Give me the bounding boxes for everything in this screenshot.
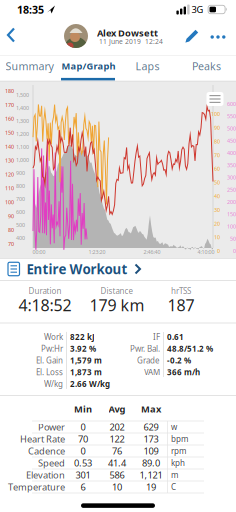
staticText: 00:00 <box>32 248 45 256</box>
staticText: 70 <box>78 433 88 445</box>
staticText: 80 <box>8 226 14 234</box>
staticText: Work <box>44 332 63 342</box>
staticText: 0 <box>217 247 220 255</box>
staticText: 6 <box>80 481 85 493</box>
staticText: IF <box>153 332 160 342</box>
staticText: 301 <box>75 469 90 481</box>
staticText: 400 <box>16 234 25 242</box>
staticText: Distance <box>100 286 133 296</box>
staticText: 1,000 <box>16 156 29 164</box>
staticText: 50 <box>214 179 220 186</box>
staticText: 80 <box>214 138 220 145</box>
staticText: 19 <box>146 481 156 493</box>
staticText: Pw:Hr <box>41 343 63 354</box>
staticText: 0.61 <box>167 332 184 342</box>
staticText: 90 <box>8 213 14 220</box>
staticText: 130 <box>5 157 14 164</box>
staticText: 20 <box>214 220 220 227</box>
staticText: El. Loss <box>36 367 63 377</box>
staticText: Elevation <box>26 469 65 481</box>
staticText: 150 <box>227 211 236 218</box>
staticText: 1:23:20 <box>88 248 105 256</box>
staticText: 500 <box>16 221 25 229</box>
staticText: 1,300 <box>16 117 29 125</box>
button[interactable]: Athlete Alex Dowsett <box>64 20 184 52</box>
staticText: Duration <box>28 286 61 296</box>
staticText: 300 <box>227 174 236 181</box>
staticText: 10 <box>214 234 220 241</box>
button[interactable]: Summary <box>0 55 59 77</box>
staticText: Summary <box>5 59 53 73</box>
staticText: 48.8/51.2 % <box>167 343 213 354</box>
staticText: 40 <box>214 193 220 200</box>
staticText: 550 <box>227 113 236 120</box>
staticText: 70 <box>214 152 220 159</box>
staticText: 0 <box>80 421 85 433</box>
staticText: 30 <box>214 206 220 213</box>
button[interactable]: Map/Graph <box>55 55 121 77</box>
staticText: 120 <box>5 171 14 178</box>
staticText: 366 m/h <box>167 367 200 377</box>
staticText: 600 <box>16 208 25 216</box>
staticText: 1,873 m <box>70 367 102 377</box>
staticText: 187 <box>167 294 194 316</box>
button[interactable]: Chart options <box>206 92 223 106</box>
button[interactable]: Peaks <box>177 55 236 77</box>
button[interactable]: Edit <box>185 29 199 43</box>
staticText: 822 kJ <box>70 332 95 342</box>
staticText: 400 <box>227 149 236 157</box>
staticText: 100 <box>211 110 220 118</box>
button[interactable]: Entire Workout <box>0 258 236 280</box>
button[interactable]: Laps <box>118 55 177 77</box>
staticText: 1,200 <box>16 130 29 138</box>
staticText: 350 <box>227 162 236 169</box>
staticText: 0 <box>233 247 236 255</box>
staticText: 700 <box>16 195 25 203</box>
staticText: Laps <box>135 59 159 73</box>
staticText: Temperature <box>8 481 65 493</box>
staticText: VAM <box>144 367 160 377</box>
staticText: Pwr. Bal. <box>130 343 160 354</box>
staticText: Min <box>74 403 92 415</box>
staticText: Entire Workout <box>26 260 127 278</box>
staticText: Max <box>141 403 161 415</box>
staticText: 10 <box>112 481 122 493</box>
staticText: Map/Graph <box>61 60 115 72</box>
staticText: 50 <box>230 235 236 242</box>
staticText: 1,100 <box>16 143 29 151</box>
staticText: 18:35 <box>17 2 44 17</box>
staticText: Alex Dowsett <box>97 27 158 39</box>
staticText: 2.66 W/kg <box>70 378 110 389</box>
staticText: 900 <box>16 169 25 177</box>
staticText: 600 <box>227 100 236 108</box>
staticText: bpm <box>171 434 188 444</box>
staticText: kph <box>171 458 185 468</box>
staticText: 109 <box>143 445 158 457</box>
staticText: W/kg <box>44 378 63 389</box>
button[interactable]: More <box>210 35 225 39</box>
staticText: 60 <box>214 165 220 172</box>
staticText: Cadence <box>28 445 65 457</box>
staticText: 160 <box>5 115 14 122</box>
staticText: 3.92 % <box>70 343 96 354</box>
staticText: 3G <box>191 3 203 16</box>
staticText: 150 <box>5 129 14 136</box>
staticText: 170 <box>5 101 14 108</box>
staticText: 629 <box>143 421 158 433</box>
button[interactable]: Back <box>1 23 21 47</box>
staticText: m <box>171 470 178 480</box>
staticText: Power <box>38 421 65 433</box>
staticText: 11 June 2019 12:24 <box>99 37 163 46</box>
staticText: 179 km <box>89 294 144 316</box>
staticText: 450 <box>227 137 236 144</box>
staticText: rpm <box>171 446 186 456</box>
staticText: Speed <box>38 457 65 469</box>
staticText: C <box>171 482 176 492</box>
staticText: w <box>171 422 177 432</box>
staticText: 110 <box>5 185 14 192</box>
staticText: 800 <box>16 182 25 190</box>
staticText: Grade <box>137 355 160 366</box>
staticText: 100 <box>5 199 14 206</box>
staticText: 4:18:52 <box>18 294 71 316</box>
staticText: 200 <box>227 198 236 206</box>
